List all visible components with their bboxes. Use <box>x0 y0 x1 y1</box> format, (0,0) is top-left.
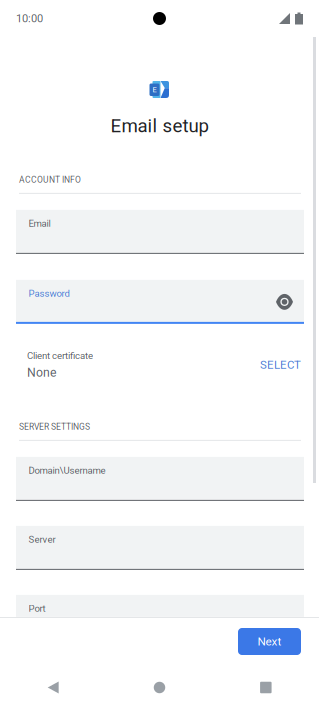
staticText: Email setup <box>110 115 208 137</box>
button[interactable]: Next <box>238 628 301 655</box>
button[interactable]: Port <box>16 595 304 617</box>
staticText: Next <box>257 635 281 648</box>
button[interactable]: Server <box>16 526 304 570</box>
button[interactable]: Password <box>16 280 304 324</box>
staticText: Email <box>28 218 50 229</box>
staticText: ACCOUNT INFO <box>19 175 81 185</box>
button[interactable]: Home <box>106 665 213 710</box>
button[interactable]: Client certificate <box>16 344 304 386</box>
staticText: Password <box>28 288 69 299</box>
button[interactable]: Email <box>16 210 304 254</box>
staticText: Domain\Username <box>28 465 105 476</box>
staticText: 10:00 <box>16 12 43 25</box>
staticText: SELECT <box>260 358 301 372</box>
staticText: Server <box>28 534 55 545</box>
button[interactable]: Back <box>0 665 106 710</box>
staticText: SERVER SETTINGS <box>19 422 90 432</box>
staticText: Client certificate <box>27 350 93 361</box>
staticText: E <box>152 85 156 94</box>
button[interactable]: Domain\Username <box>16 457 304 501</box>
button[interactable]: Recent apps <box>213 665 319 710</box>
staticText: None <box>27 365 57 380</box>
staticText: Port <box>28 603 45 614</box>
